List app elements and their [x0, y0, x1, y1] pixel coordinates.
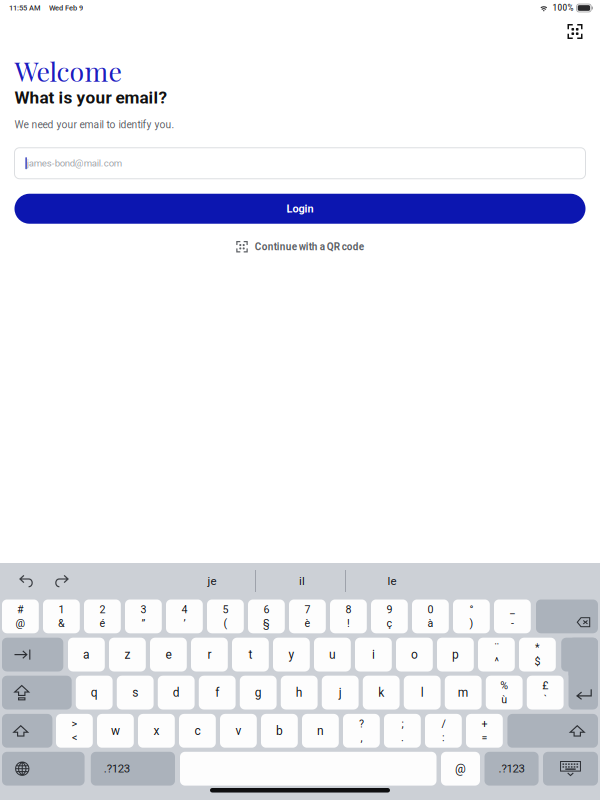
- button[interactable]: Login: [14, 194, 585, 224]
- button[interactable]: @: [441, 752, 480, 786]
- button[interactable]: le: [352, 568, 432, 594]
- button[interactable]: £: [527, 676, 564, 709]
- button[interactable]: p: [437, 638, 474, 671]
- button[interactable]: j: [322, 676, 359, 709]
- button[interactable]: ¨: [478, 638, 515, 671]
- button[interactable]: *: [519, 638, 556, 671]
- button[interactable]: x: [138, 714, 175, 748]
- button[interactable]: Next keyboard: [2, 752, 85, 786]
- button[interactable]: 4: [166, 599, 203, 633]
- button[interactable]: h: [281, 676, 318, 709]
- button[interactable]: q: [76, 676, 113, 709]
- button[interactable]: r: [191, 638, 228, 671]
- button[interactable]: 5: [207, 599, 244, 633]
- button[interactable]: .?123: [91, 752, 175, 786]
- button[interactable]: %: [486, 676, 523, 709]
- button[interactable]: i: [355, 638, 392, 671]
- button[interactable]: Redo: [48, 570, 74, 592]
- staticText: 0: [427, 603, 433, 616]
- button[interactable]: f: [199, 676, 236, 709]
- button[interactable]: b: [261, 714, 298, 748]
- button[interactable]: Backspace: [536, 599, 598, 633]
- button[interactable]: 3: [125, 599, 162, 633]
- button[interactable]: Scan QR code: [559, 17, 591, 45]
- staticText: p: [452, 648, 459, 662]
- staticText: ): [469, 617, 473, 629]
- button[interactable]: 6: [248, 599, 285, 633]
- button[interactable]: o: [396, 638, 433, 671]
- button[interactable]: Return: [561, 638, 598, 709]
- staticText: 100%: [553, 3, 574, 13]
- button[interactable]: ;: [384, 714, 421, 748]
- button[interactable]: d: [158, 676, 195, 709]
- button[interactable]: z: [109, 638, 146, 671]
- staticText: .?123: [499, 762, 525, 775]
- staticText: =: [481, 731, 487, 744]
- staticText: .: [401, 731, 404, 744]
- staticText: k: [378, 686, 384, 700]
- button[interactable]: m: [445, 676, 482, 709]
- staticText: je: [207, 574, 216, 588]
- button[interactable]: a: [68, 638, 105, 671]
- button[interactable]: k: [363, 676, 400, 709]
- staticText: .?123: [104, 762, 130, 775]
- staticText: h: [296, 686, 303, 700]
- button[interactable]: Space: [180, 752, 436, 786]
- staticText: Welcome: [14, 53, 121, 88]
- button[interactable]: 0: [412, 599, 449, 633]
- button[interactable]: il: [262, 568, 342, 594]
- button[interactable]: 2: [84, 599, 121, 633]
- button[interactable]: u: [314, 638, 351, 671]
- button[interactable]: ?: [343, 714, 380, 748]
- staticText: We need your email to identify you.: [14, 119, 174, 131]
- button[interactable]: >: [56, 714, 93, 748]
- button[interactable]: 8: [330, 599, 367, 633]
- button[interactable]: .?123: [484, 752, 539, 786]
- button[interactable]: #: [2, 599, 39, 633]
- staticText: t: [248, 648, 252, 662]
- button[interactable]: s: [117, 676, 154, 709]
- button[interactable]: y: [273, 638, 310, 671]
- button[interactable]: 7: [289, 599, 326, 633]
- button[interactable]: 1: [43, 599, 80, 633]
- staticText: 11:55 AM: [9, 4, 41, 12]
- staticText: le: [387, 574, 396, 588]
- staticText: Wed Feb 9: [49, 4, 83, 12]
- button[interactable]: 9: [371, 599, 408, 633]
- button[interactable]: Caps lock: [2, 676, 72, 709]
- button[interactable]: Continue with a QR code: [14, 234, 585, 260]
- button[interactable]: n: [302, 714, 339, 748]
- staticText: Login: [286, 202, 313, 215]
- button[interactable]: t: [232, 638, 269, 671]
- button[interactable]: c: [179, 714, 216, 748]
- staticText: 6: [263, 603, 269, 616]
- button[interactable]: Undo: [14, 570, 40, 592]
- button[interactable]: v: [220, 714, 257, 748]
- staticText: /: [441, 718, 445, 730]
- button[interactable]: g: [240, 676, 277, 709]
- staticText: :: [442, 731, 445, 744]
- button[interactable]: /: [425, 714, 462, 748]
- button[interactable]: Hide keyboard: [543, 752, 598, 786]
- button[interactable]: je: [172, 568, 252, 594]
- staticText: !: [347, 617, 350, 629]
- staticText: ç: [386, 617, 392, 629]
- button[interactable]: e: [150, 638, 187, 671]
- staticText: u: [329, 648, 336, 662]
- staticText: ,: [360, 731, 362, 744]
- button[interactable]: l: [404, 676, 441, 709]
- button[interactable]: °: [453, 599, 490, 633]
- staticText: 3: [140, 603, 146, 616]
- button[interactable]: +: [466, 714, 503, 748]
- button[interactable]: _: [494, 599, 531, 633]
- button[interactable]: Tab: [2, 638, 63, 671]
- button[interactable]: w: [97, 714, 134, 748]
- staticText: *: [535, 641, 540, 654]
- staticText: °: [469, 603, 473, 616]
- staticText: %: [500, 679, 508, 692]
- staticText: <: [72, 731, 77, 744]
- button[interactable]: Shift: [2, 714, 52, 748]
- staticText: v: [235, 724, 241, 738]
- staticText: &: [58, 617, 65, 629]
- button[interactable]: Shift: [507, 714, 598, 748]
